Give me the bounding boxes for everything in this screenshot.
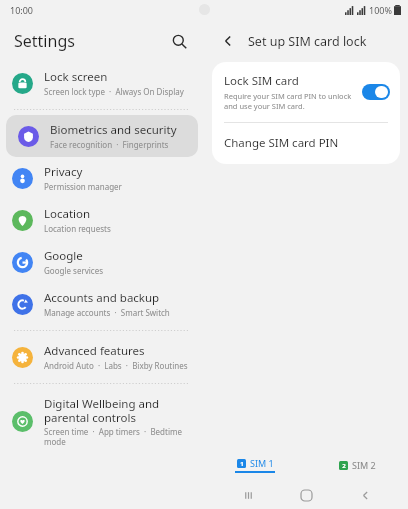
staticText: Lock SIM card: [224, 73, 299, 89]
staticText: Location requests: [44, 223, 111, 234]
button[interactable]: Digital Wellbeing and parental controls: [0, 389, 204, 454]
staticText: Google: [44, 248, 83, 264]
staticText: 10:00: [10, 4, 34, 16]
staticText: 2: [342, 462, 346, 470]
button[interactable]: Back: [350, 481, 380, 509]
staticText: Set up SIM card lock: [248, 33, 367, 50]
staticText: SIM 1: [250, 457, 274, 469]
staticText: Screen lock type · Always On Display: [44, 86, 184, 97]
button[interactable]: Lock SIM card toggle: [362, 84, 390, 100]
button[interactable]: Change SIM card PIN: [212, 123, 400, 164]
staticText: SIM 2: [352, 459, 376, 471]
button[interactable]: 1: [204, 449, 306, 481]
button[interactable]: Biometrics and security: [6, 115, 198, 157]
staticText: Screen time · App timers · Bedtime mode: [44, 426, 192, 447]
staticText: Location: [44, 206, 91, 222]
staticText: 1: [240, 460, 244, 468]
staticText: Settings: [14, 30, 75, 52]
button[interactable]: Google: [0, 241, 204, 283]
staticText: Digital Wellbeing and parental controls: [44, 396, 192, 425]
staticText: Require your SIM card PIN to unlock and …: [224, 91, 354, 111]
staticText: Face recognition · Fingerprints: [50, 139, 169, 150]
staticText: Lock screen: [44, 69, 108, 85]
staticText: Advanced features: [44, 343, 145, 359]
button[interactable]: Recents: [233, 481, 263, 509]
button[interactable]: Accounts and backup: [0, 283, 204, 325]
staticText: 100%: [369, 4, 392, 16]
staticText: Privacy: [44, 164, 83, 180]
staticText: Manage accounts · Smart Switch: [44, 307, 170, 318]
button[interactable]: Search: [166, 28, 192, 54]
button[interactable]: Back: [216, 29, 240, 53]
button[interactable]: Location: [0, 199, 204, 241]
button[interactable]: 2: [306, 449, 408, 481]
staticText: Android Auto · Labs · Bixby Routines: [44, 360, 188, 371]
button[interactable]: Home: [291, 481, 321, 509]
button[interactable]: Lock SIM card: [212, 62, 400, 122]
staticText: Change SIM card PIN: [224, 135, 339, 151]
button[interactable]: Advanced features: [0, 336, 204, 378]
button[interactable]: Lock screen: [0, 62, 204, 104]
staticText: Google services: [44, 265, 104, 276]
staticText: Biometrics and security: [50, 122, 177, 138]
button[interactable]: Privacy: [0, 157, 204, 199]
staticText: Accounts and backup: [44, 290, 160, 306]
staticText: Permission manager: [44, 181, 122, 192]
